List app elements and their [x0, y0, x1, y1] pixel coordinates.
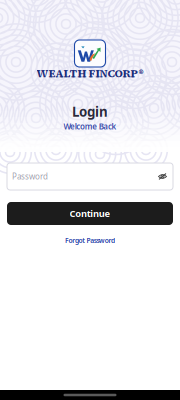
staticText: WEALTH FINCORP®: [36, 66, 143, 81]
button[interactable]: Show password: [156, 167, 169, 185]
staticText: Forgot Password: [65, 236, 115, 245]
staticText: Continue: [69, 207, 110, 220]
button[interactable]: Forgot Password: [65, 235, 115, 246]
staticText: Welcome Back: [63, 121, 117, 132]
staticText: Login: [72, 103, 108, 120]
staticText: Password: [12, 171, 48, 182]
button[interactable]: Continue: [7, 202, 173, 225]
